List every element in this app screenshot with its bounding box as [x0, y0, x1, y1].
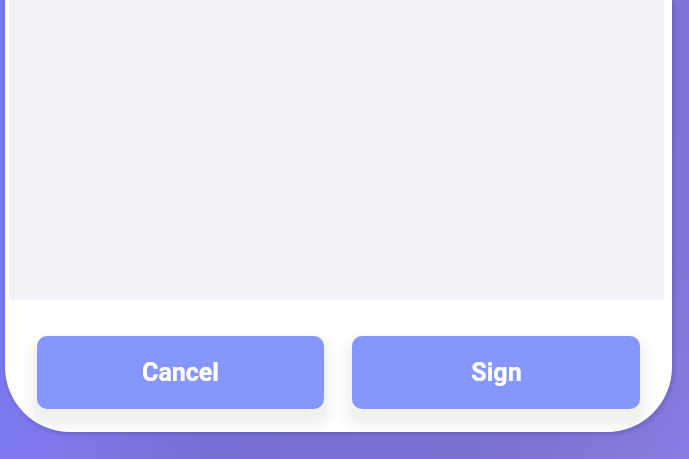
- staticText: Cancel: [142, 358, 219, 387]
- button[interactable]: Cancel: [37, 336, 324, 409]
- staticText: Sign: [471, 358, 522, 387]
- button[interactable]: Sign: [352, 336, 640, 409]
